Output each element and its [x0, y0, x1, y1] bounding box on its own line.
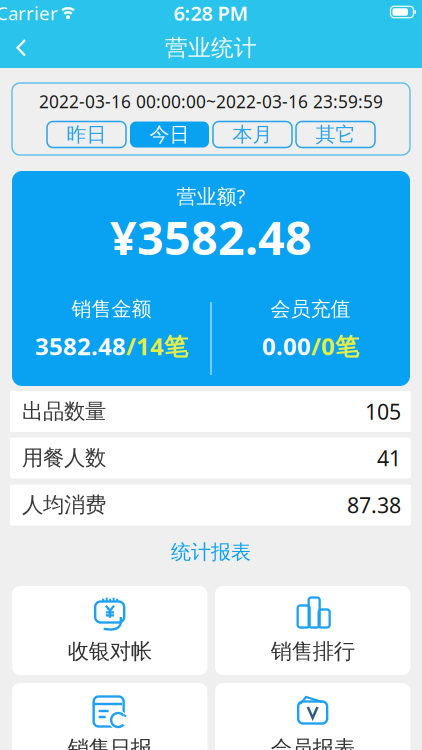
staticText: 出品数量: [22, 398, 106, 425]
staticText: 营业统计: [165, 34, 257, 62]
staticText: Carrier: [0, 1, 58, 25]
staticText: 人均消费: [22, 492, 106, 518]
staticText: 销售日报: [68, 735, 152, 750]
staticText: 统计报表: [171, 540, 251, 564]
staticText: 3582.48: [35, 330, 126, 362]
staticText: ¥3582.48: [110, 206, 312, 268]
staticText: 营业额?: [176, 183, 245, 209]
staticText: 昨日: [66, 122, 106, 147]
button[interactable]: 其它: [296, 121, 375, 147]
staticText: 收银对帐: [68, 638, 152, 665]
staticText: /14笔: [126, 330, 188, 362]
staticText: 2022-03-16 00:00:00~2022-03-16 23:59:59: [39, 90, 383, 113]
staticText: 本月: [232, 122, 272, 147]
staticText: 41: [377, 444, 401, 472]
staticText: 会员报表: [271, 735, 355, 750]
button[interactable]: 昨日: [47, 121, 126, 147]
button[interactable]: 销售日报: [12, 683, 207, 750]
staticText: 6:28 PM: [173, 0, 248, 26]
button[interactable]: 今日: [130, 121, 209, 147]
staticText: 87.38: [347, 491, 401, 519]
staticText: 今日: [149, 122, 189, 147]
staticText: 0.00: [262, 330, 311, 362]
button[interactable]: Back: [16, 39, 28, 57]
button[interactable]: 会员报表: [215, 683, 410, 750]
staticText: 销售金额: [71, 297, 151, 321]
button[interactable]: 销售排行: [215, 586, 410, 675]
staticText: /0笔: [311, 330, 359, 362]
button[interactable]: 收银对帐: [12, 586, 207, 675]
button[interactable]: 本月: [213, 121, 292, 147]
staticText: 会员充值: [270, 297, 350, 321]
staticText: 销售排行: [271, 638, 355, 665]
staticText: 其它: [315, 122, 355, 147]
staticText: 105: [365, 397, 401, 426]
staticText: 用餐人数: [22, 445, 106, 471]
